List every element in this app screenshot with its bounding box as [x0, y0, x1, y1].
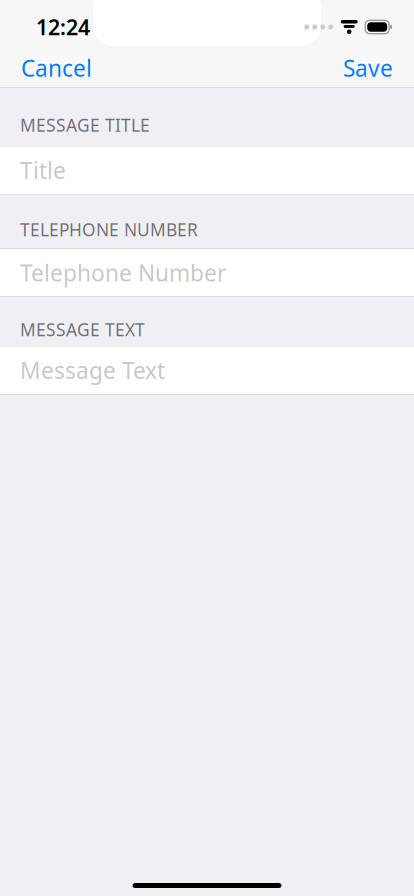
button[interactable]: Save [335, 44, 401, 92]
staticText: MESSAGE TITLE [20, 113, 150, 136]
staticText: 12:24 [36, 13, 90, 41]
staticText: Message Text [20, 355, 165, 385]
button[interactable]: Title [0, 146, 414, 194]
staticText: MESSAGE TEXT [20, 318, 145, 341]
staticText: TELEPHONE NUMBER [20, 218, 198, 241]
staticText: Cancel [21, 53, 92, 83]
button[interactable]: Telephone Number [0, 249, 414, 296]
staticText: Telephone Number [20, 258, 226, 288]
button[interactable]: Message Text [0, 346, 414, 394]
staticText: Title [20, 155, 66, 185]
staticText: Save [343, 53, 393, 83]
button[interactable]: Cancel [13, 44, 100, 92]
